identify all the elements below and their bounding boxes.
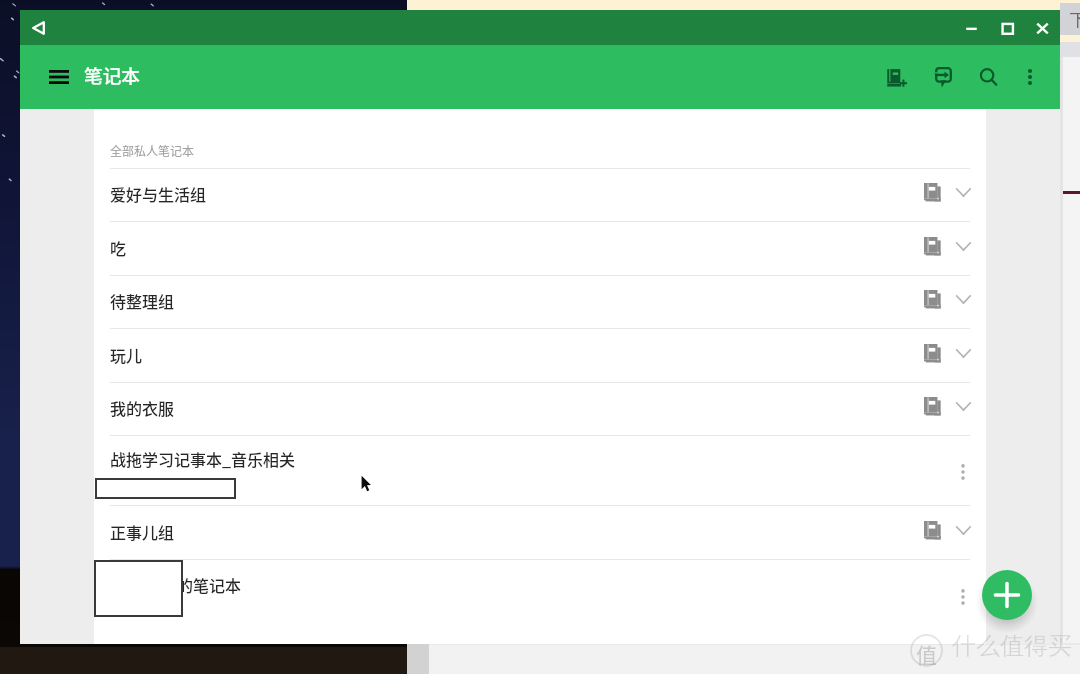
button[interactable]: Create notebook xyxy=(982,570,1032,620)
button[interactable]: 吃 xyxy=(94,222,986,276)
staticText: 笔记本 xyxy=(84,61,141,88)
button[interactable]: Share to xyxy=(922,56,964,98)
button[interactable]: New notebook xyxy=(875,56,917,98)
staticText: 值 xyxy=(916,639,937,669)
button[interactable]: 的笔记本 xyxy=(94,560,986,644)
button[interactable]: Maximize xyxy=(990,11,1024,45)
button[interactable]: Open navigation drawer xyxy=(39,57,79,97)
staticText: 吃 xyxy=(110,236,127,259)
button[interactable]: 战拖学习记事本_音乐相关 xyxy=(94,436,986,506)
staticText: 的笔记本 xyxy=(177,573,242,596)
staticText: 我的衣服 xyxy=(110,396,175,419)
button[interactable]: More options xyxy=(1009,56,1051,98)
button[interactable]: 正事儿组 xyxy=(94,506,986,560)
staticText: 爱好与生活组 xyxy=(110,182,207,205)
button[interactable]: 爱好与生活组 xyxy=(94,168,986,222)
button[interactable]: Search xyxy=(967,56,1009,98)
staticText: 待整理组 xyxy=(110,289,175,312)
staticText: 什么值得买 xyxy=(952,631,1072,661)
staticText: 战拖学习记事本_音乐相关 xyxy=(110,447,295,470)
button[interactable]: 我的衣服 xyxy=(94,382,986,436)
button[interactable]: Back xyxy=(21,10,55,45)
button[interactable]: 玩儿 xyxy=(94,329,986,383)
button[interactable]: Close xyxy=(1025,11,1059,45)
button[interactable]: Minimize xyxy=(954,11,988,45)
staticText: 玩儿 xyxy=(110,343,143,366)
staticText: 下 xyxy=(1070,10,1080,31)
staticText: 全部私人笔记本 xyxy=(110,142,195,159)
staticText: 正事儿组 xyxy=(110,520,175,543)
button[interactable]: 待整理组 xyxy=(94,275,986,329)
